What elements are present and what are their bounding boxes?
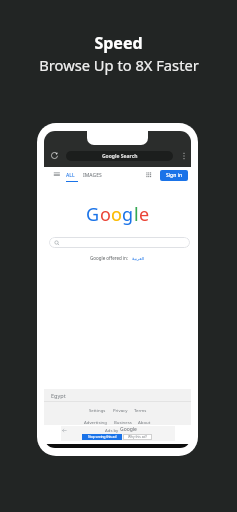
button[interactable]: Reload	[50, 151, 59, 160]
button[interactable]: Terms	[134, 407, 147, 413]
button[interactable]	[49, 237, 190, 248]
staticText: Browse Up to 8X Faster	[39, 55, 199, 75]
staticText: Ads by	[105, 427, 120, 433]
button[interactable]: Menu	[53, 170, 61, 178]
staticText: Google Search	[102, 153, 138, 160]
staticText: IMAGES	[83, 172, 102, 179]
button[interactable]: Google Search	[66, 151, 173, 161]
staticText: Google offered in:	[90, 255, 129, 261]
button[interactable]: More options	[180, 152, 188, 160]
staticText: o	[100, 202, 111, 227]
button[interactable]: About	[138, 419, 151, 425]
staticText: Stop seeing this ad	[88, 435, 117, 439]
button[interactable]: Back	[61, 427, 68, 434]
staticText: Why this ad?	[128, 435, 147, 439]
button[interactable]: Advertising	[84, 419, 107, 425]
button[interactable]: Stop seeing this ad	[82, 434, 122, 440]
staticText: Sign in	[166, 172, 183, 179]
staticText: Speed	[94, 32, 143, 54]
staticText: e	[139, 202, 150, 227]
staticText: Google	[120, 426, 137, 433]
staticText: l	[134, 202, 139, 227]
staticText: g	[122, 202, 134, 227]
staticText: Egypt	[51, 392, 66, 399]
button[interactable]: Business	[114, 419, 132, 425]
button[interactable]: Settings	[89, 407, 106, 413]
button[interactable]: Google apps	[144, 170, 152, 178]
button[interactable]: Why this ad?	[123, 434, 152, 440]
staticText: o	[111, 202, 122, 227]
staticText: G	[86, 202, 100, 227]
staticText: ALL	[66, 172, 75, 179]
button[interactable]: ALL	[66, 172, 75, 179]
button[interactable]: Privacy	[113, 407, 128, 413]
button[interactable]: العربية	[132, 256, 145, 261]
button[interactable]: Sign in	[160, 170, 188, 181]
button[interactable]: IMAGES	[83, 172, 102, 179]
